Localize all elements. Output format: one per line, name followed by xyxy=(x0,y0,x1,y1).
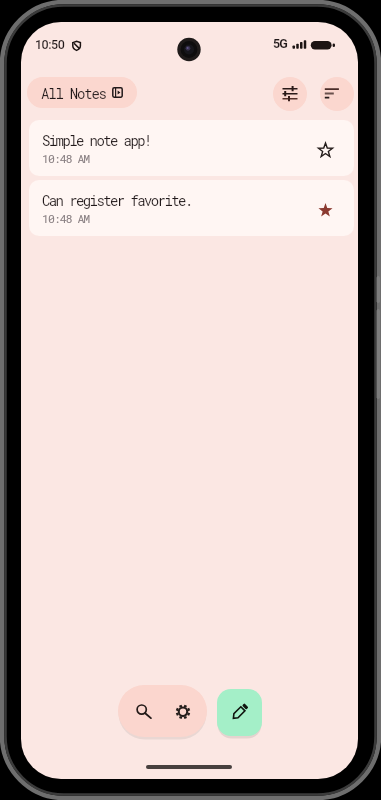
staticText: All Notes xyxy=(41,84,106,102)
button[interactable] xyxy=(118,685,163,737)
staticText: 10:48 AM xyxy=(42,151,90,166)
button[interactable]: All Notes xyxy=(27,77,137,108)
staticText: Can register favorite. xyxy=(42,191,192,209)
staticText: Simple note app! xyxy=(42,131,151,149)
button[interactable] xyxy=(273,77,307,111)
button[interactable] xyxy=(217,689,262,736)
staticText: 5G xyxy=(273,36,288,51)
button[interactable] xyxy=(163,685,207,737)
staticText: 10:48 AM xyxy=(42,211,90,226)
button[interactable]: Can register favorite. xyxy=(29,180,354,236)
button[interactable]: Simple note app! xyxy=(29,120,354,176)
staticText: 10:50 xyxy=(35,37,65,52)
button[interactable] xyxy=(320,77,354,111)
